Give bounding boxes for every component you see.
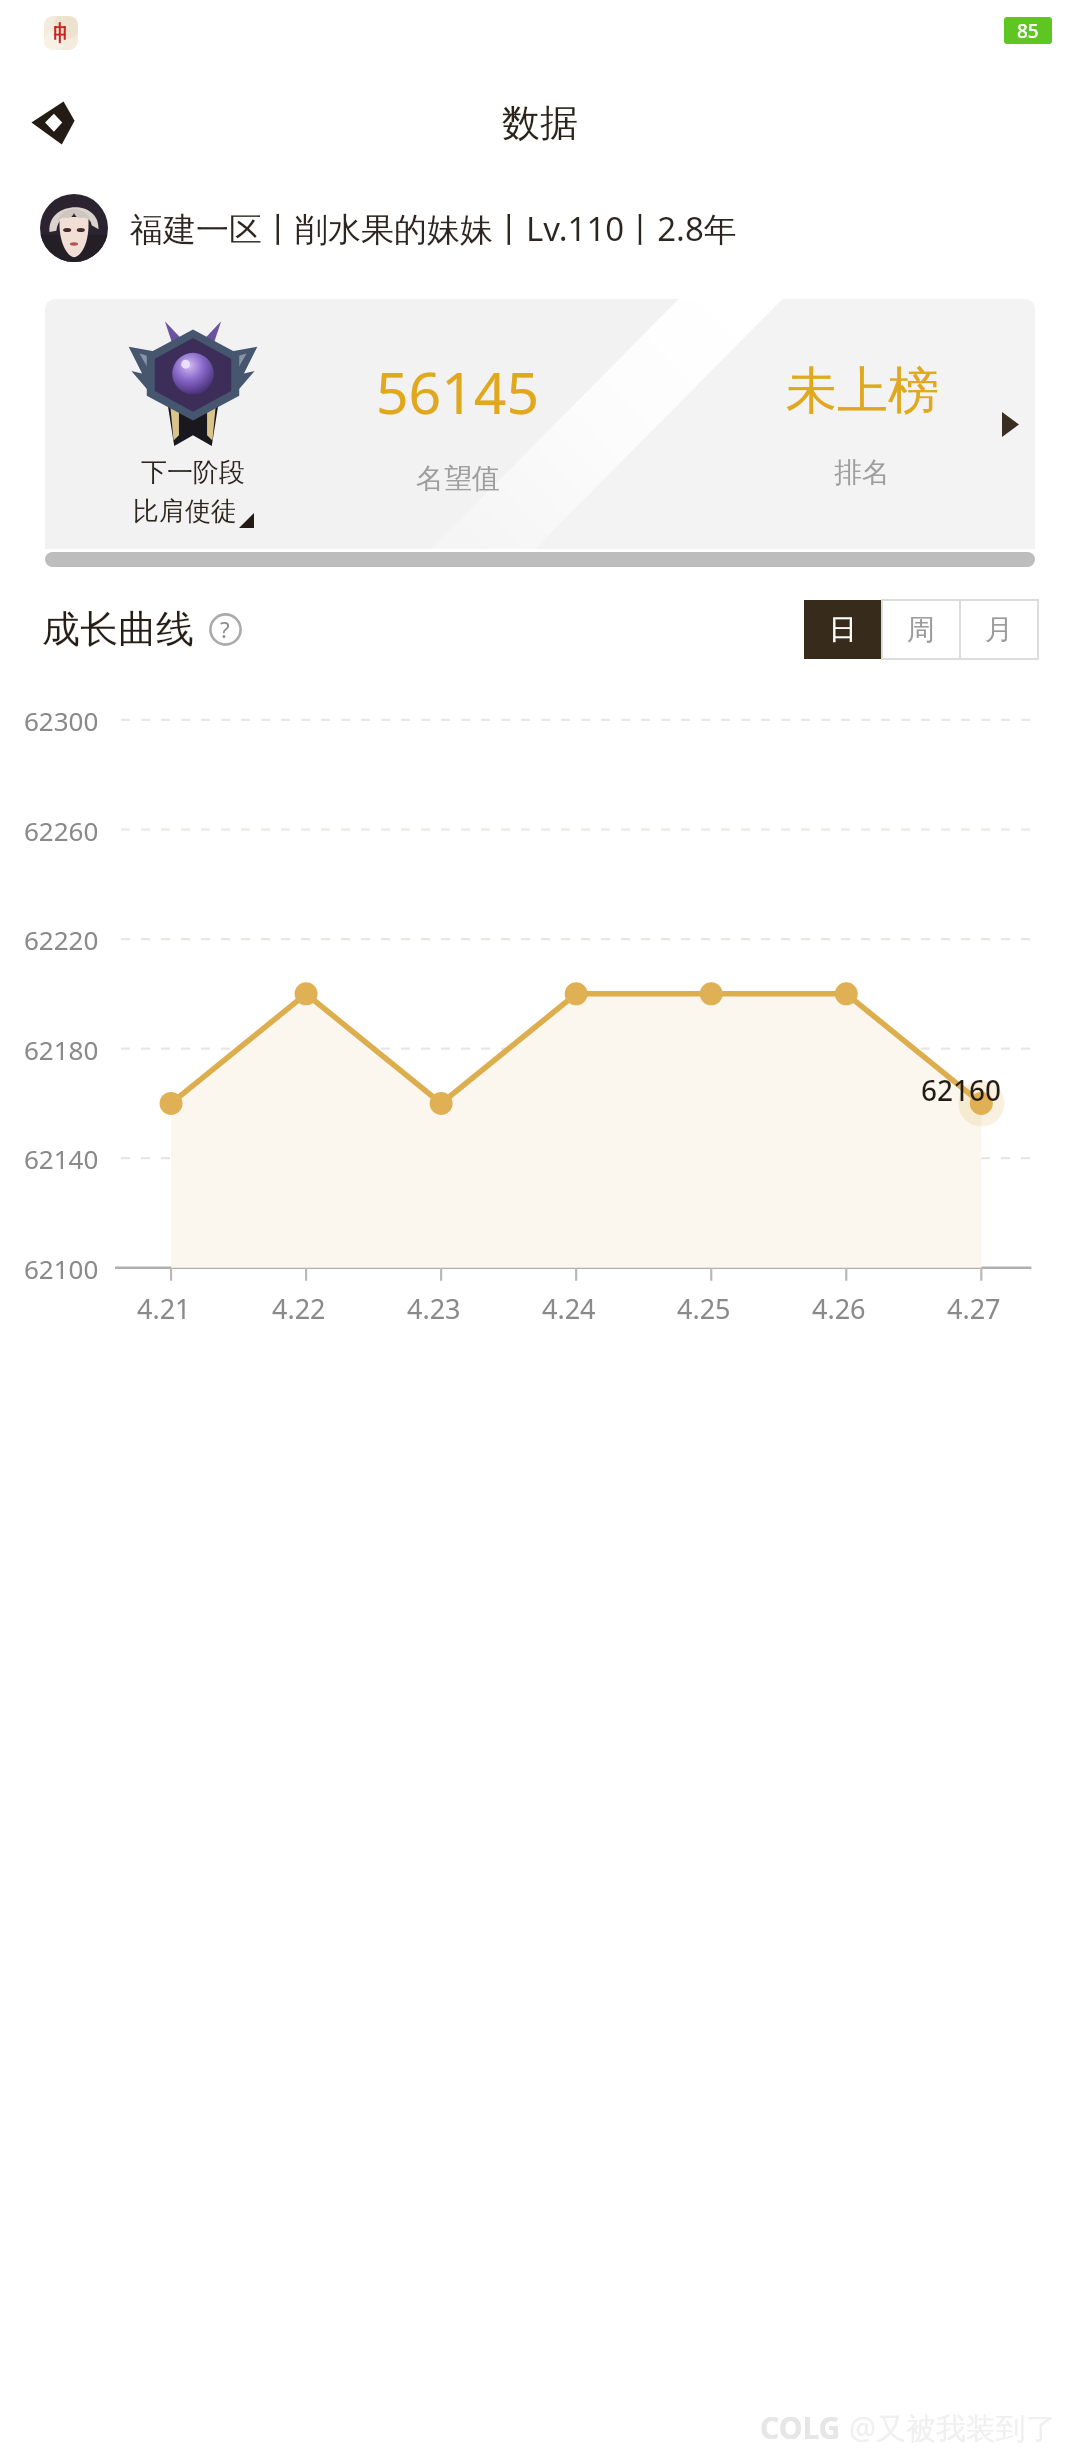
button[interactable]: 月 <box>960 600 1038 659</box>
staticText: 月 <box>985 612 1013 647</box>
staticText: 4.25 <box>677 1290 731 1327</box>
staticText: 4.22 <box>272 1290 326 1327</box>
staticText: 下一阶段 <box>141 456 245 489</box>
staticText: 62260 <box>24 813 99 848</box>
staticText: COLG <box>760 2407 841 2448</box>
button[interactable]: 日 <box>804 600 882 659</box>
staticText: 56145 <box>376 353 540 431</box>
staticText: 排名 <box>834 455 890 490</box>
staticText: 日 <box>829 612 857 647</box>
staticText: 成长曲线 <box>42 605 194 653</box>
staticText: 4.27 <box>947 1290 1001 1327</box>
button[interactable]: Back <box>16 86 90 160</box>
staticText: 62140 <box>24 1141 99 1176</box>
staticText: 62300 <box>24 703 99 738</box>
button[interactable]: 福建一区丨削水果的妹妹丨Lv.110丨2.8年 <box>0 178 1080 278</box>
staticText: 福建一区丨削水果的妹妹丨Lv.110丨2.8年 <box>130 206 737 251</box>
staticText: @又被我装到了 <box>849 2407 1056 2448</box>
button[interactable]: 下一阶段 <box>45 299 1035 549</box>
staticText: 未上榜 <box>786 359 939 423</box>
staticText: 85 <box>1017 18 1039 44</box>
staticText: 名望值 <box>416 461 500 496</box>
staticText: ? <box>220 614 230 644</box>
staticText: 数据 <box>502 99 578 147</box>
staticText: 4.26 <box>812 1290 866 1327</box>
staticText: 62100 <box>24 1251 99 1286</box>
staticText: 比肩使徒 <box>133 495 237 528</box>
staticText: 62160 <box>921 1071 1002 1109</box>
button[interactable]: 周 <box>882 600 960 659</box>
staticText: 62220 <box>24 922 99 957</box>
staticText: 62180 <box>24 1032 99 1067</box>
staticText: 周 <box>907 612 935 647</box>
button[interactable]: Help <box>206 610 244 648</box>
staticText: 4.21 <box>137 1290 191 1327</box>
staticText: 4.24 <box>542 1290 596 1327</box>
staticText: 4.23 <box>407 1290 461 1327</box>
